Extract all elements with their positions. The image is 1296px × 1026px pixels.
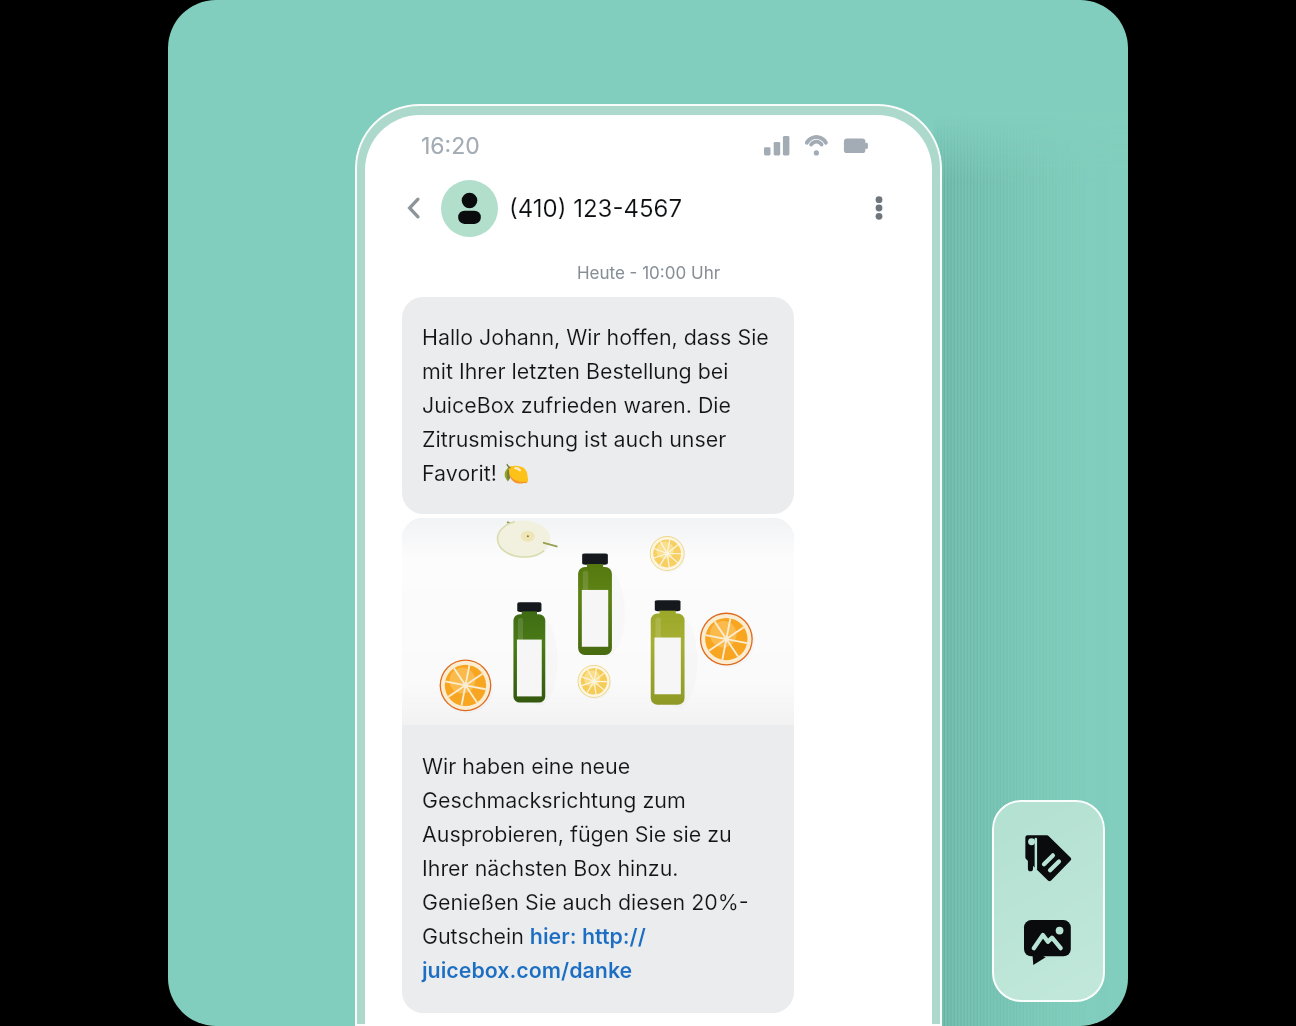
- staticText: Wir haben eine neue Geschmacksrichtung z…: [422, 753, 774, 983]
- staticText: (410) 123-4567: [509, 194, 683, 223]
- button[interactable]: Add coupon: [1016, 826, 1078, 888]
- staticText: Hallo Johann, Wir hoffen, dass Sie mit I…: [422, 324, 774, 486]
- button[interactable]: Hallo Johann, Wir hoffen, dass Sie mit I…: [402, 297, 794, 514]
- button[interactable]: More options: [862, 191, 896, 225]
- button[interactable]: Wir haben eine neue Geschmacksrichtung z…: [402, 518, 794, 1013]
- button[interactable]: Back: [397, 191, 431, 225]
- staticText: 16:20: [421, 132, 480, 160]
- staticText: Heute - 10:00 Uhr: [365, 263, 932, 284]
- button[interactable]: Send picture message: [1016, 912, 1078, 974]
